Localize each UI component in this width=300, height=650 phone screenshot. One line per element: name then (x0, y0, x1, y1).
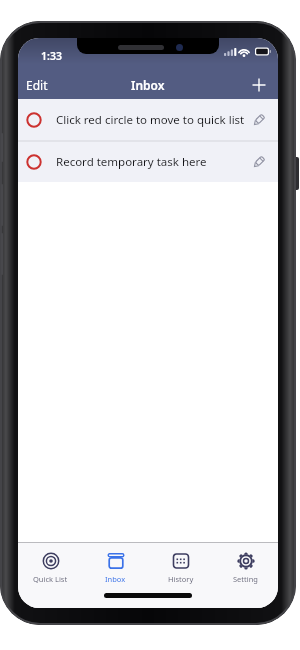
button[interactable]: Inbox (83, 543, 148, 595)
button[interactable]: History (148, 543, 213, 595)
staticText: Edit (26, 77, 48, 93)
staticText: Inbox (131, 77, 165, 93)
staticText: History (168, 574, 194, 584)
staticText: Click red circle to move to quick list (56, 112, 252, 128)
button[interactable]: Edit (26, 77, 48, 93)
staticText: Setting (233, 574, 258, 584)
button[interactable]: Record temporary task here (18, 142, 278, 182)
staticText: 1:33 (41, 49, 62, 63)
staticText: Record temporary task here (56, 154, 252, 170)
staticText: Inbox (105, 574, 126, 584)
staticText: Quick List (33, 574, 68, 584)
button[interactable]: Click red circle to move to quick list (18, 99, 278, 140)
button[interactable] (250, 76, 268, 94)
button[interactable]: Quick List (18, 543, 83, 595)
button[interactable]: Setting (213, 543, 278, 595)
